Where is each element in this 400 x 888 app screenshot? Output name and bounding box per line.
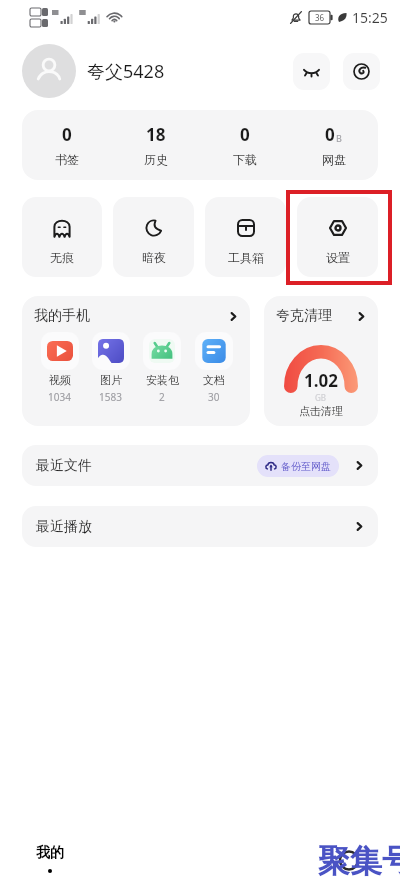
staticText: 1.02 <box>304 369 338 392</box>
staticText: 安装包 <box>146 373 179 387</box>
staticText: 工具箱 <box>228 250 264 265</box>
button[interactable]: 我的手机 <box>22 296 250 426</box>
button[interactable]: 备份至网盘 <box>257 455 339 477</box>
staticText: 最近文件 <box>36 457 92 475</box>
staticText: 无痕 <box>50 250 74 265</box>
staticText: 网盘 <box>322 152 346 167</box>
staticText: 夸克清理 <box>276 307 332 325</box>
button[interactable]: 我的 <box>36 844 64 873</box>
staticText: 夸父5428 <box>87 59 165 84</box>
button[interactable]: 文档 <box>188 332 240 404</box>
staticText: 1034 <box>48 390 71 404</box>
staticText: 0 <box>240 123 250 146</box>
staticText: 15:25 <box>352 8 388 27</box>
staticText: 备份至网盘 <box>281 460 331 473</box>
button[interactable]: 设置 <box>297 197 378 277</box>
button[interactable]: 0 <box>289 110 378 180</box>
staticText: 18 <box>146 123 166 146</box>
staticText: 历史 <box>144 152 168 167</box>
button[interactable] <box>22 44 76 98</box>
staticText: 设置 <box>326 250 350 265</box>
staticText: 聚集号 <box>318 841 400 881</box>
staticText: 1583 <box>99 390 122 404</box>
staticText: 30 <box>208 390 220 404</box>
staticText: 暗夜 <box>142 250 166 265</box>
staticText: GB <box>315 392 327 403</box>
button[interactable]: Customer service <box>343 53 380 90</box>
button[interactable]: Incognito mode <box>293 53 330 90</box>
staticText: B <box>336 132 342 144</box>
staticText: 0 <box>325 123 335 146</box>
staticText: 我的 <box>36 844 64 862</box>
staticText: 书签 <box>55 152 79 167</box>
button[interactable]: 0 <box>200 110 289 180</box>
button[interactable]: 视频 <box>34 332 85 404</box>
button[interactable]: 最近文件 <box>22 445 378 486</box>
button[interactable]: 夸克清理 <box>264 296 378 426</box>
staticText: 36 <box>315 12 325 23</box>
staticText: 0 <box>62 123 72 146</box>
button[interactable]: 暗夜 <box>113 197 194 277</box>
button[interactable]: 最近播放 <box>22 506 378 547</box>
staticText: 2 <box>159 390 165 404</box>
button[interactable]: 18 <box>111 110 200 180</box>
button[interactable]: 工具箱 <box>205 197 286 277</box>
staticText: 点击清理 <box>299 404 343 418</box>
button[interactable]: 安装包 <box>136 332 188 404</box>
staticText: 我的手机 <box>34 307 90 325</box>
button[interactable]: 0 <box>22 110 111 180</box>
button[interactable]: 图片 <box>85 332 136 404</box>
staticText: 最近播放 <box>36 518 92 536</box>
staticText: 下载 <box>233 152 257 167</box>
staticText: 图片 <box>100 373 122 387</box>
button[interactable]: 无痕 <box>22 197 102 277</box>
staticText: 视频 <box>49 373 71 387</box>
staticText: 文档 <box>203 373 225 387</box>
